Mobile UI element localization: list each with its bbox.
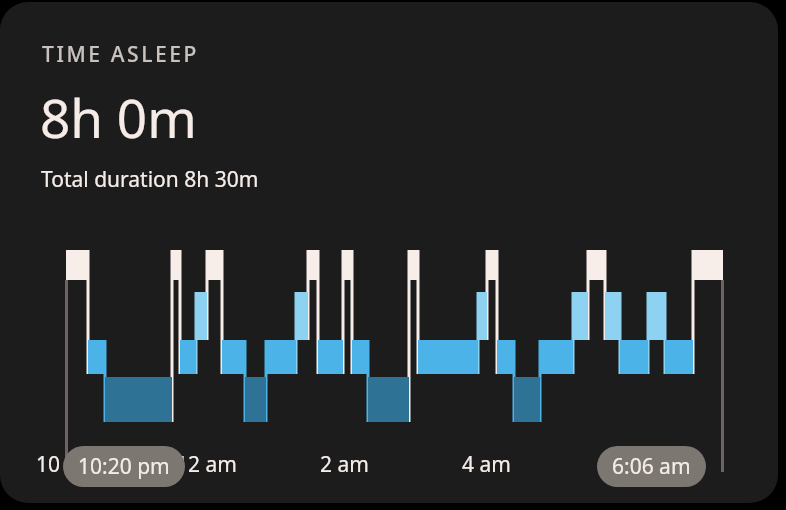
staticText: 10 pm — [36, 450, 99, 479]
staticText: Total duration 8h 30m — [41, 165, 259, 194]
button[interactable]: 10:20 pm — [63, 446, 185, 487]
staticText: 6:06 am — [612, 452, 691, 481]
staticText: 4 am — [462, 450, 511, 479]
staticText: 2 am — [320, 450, 369, 479]
button[interactable]: 6:06 am — [597, 446, 706, 487]
staticText: 12 am — [176, 450, 237, 479]
staticText: 10:20 pm — [78, 452, 170, 481]
staticText: 6 am — [604, 450, 653, 479]
staticText: 8h 0m — [40, 81, 197, 153]
staticText: TIME ASLEEP — [42, 40, 199, 69]
